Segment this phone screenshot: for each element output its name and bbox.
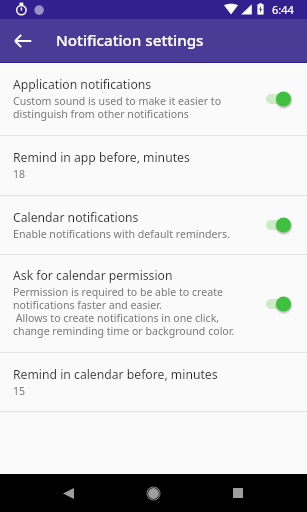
button[interactable]: Home [131,474,176,512]
staticText: 18 [13,167,26,181]
staticText: 6:44 [272,2,294,17]
button[interactable]: Ask for calendar permission [0,255,307,352]
staticText: Ask for calendar permission [13,267,173,284]
button[interactable]: Remind in calendar before, minutes [0,353,307,411]
button[interactable]: Calendar notifications [0,196,307,254]
staticText: Remind in app before, minutes [13,149,190,166]
staticText: Notification settings [56,30,204,51]
button[interactable]: Toggle setting [266,293,291,315]
staticText: Permission is required to be able to cre… [13,285,235,339]
staticText: Remind in calendar before, minutes [13,366,218,383]
staticText: Calendar notifications [13,209,139,226]
staticText: 15 [13,384,26,398]
button[interactable]: Back [46,474,91,512]
button[interactable]: Back [0,19,46,62]
button[interactable]: Recent apps [215,474,260,512]
staticText: Enable notifications with default remind… [13,227,230,241]
staticText: Application notifications [13,76,152,93]
staticText: Custom sound is used to make it easier t… [13,94,222,122]
button[interactable]: Toggle setting [266,88,291,110]
button[interactable]: Remind in app before, minutes [0,136,307,195]
button[interactable]: Toggle setting [266,214,291,236]
button[interactable]: Application notifications [0,63,307,135]
